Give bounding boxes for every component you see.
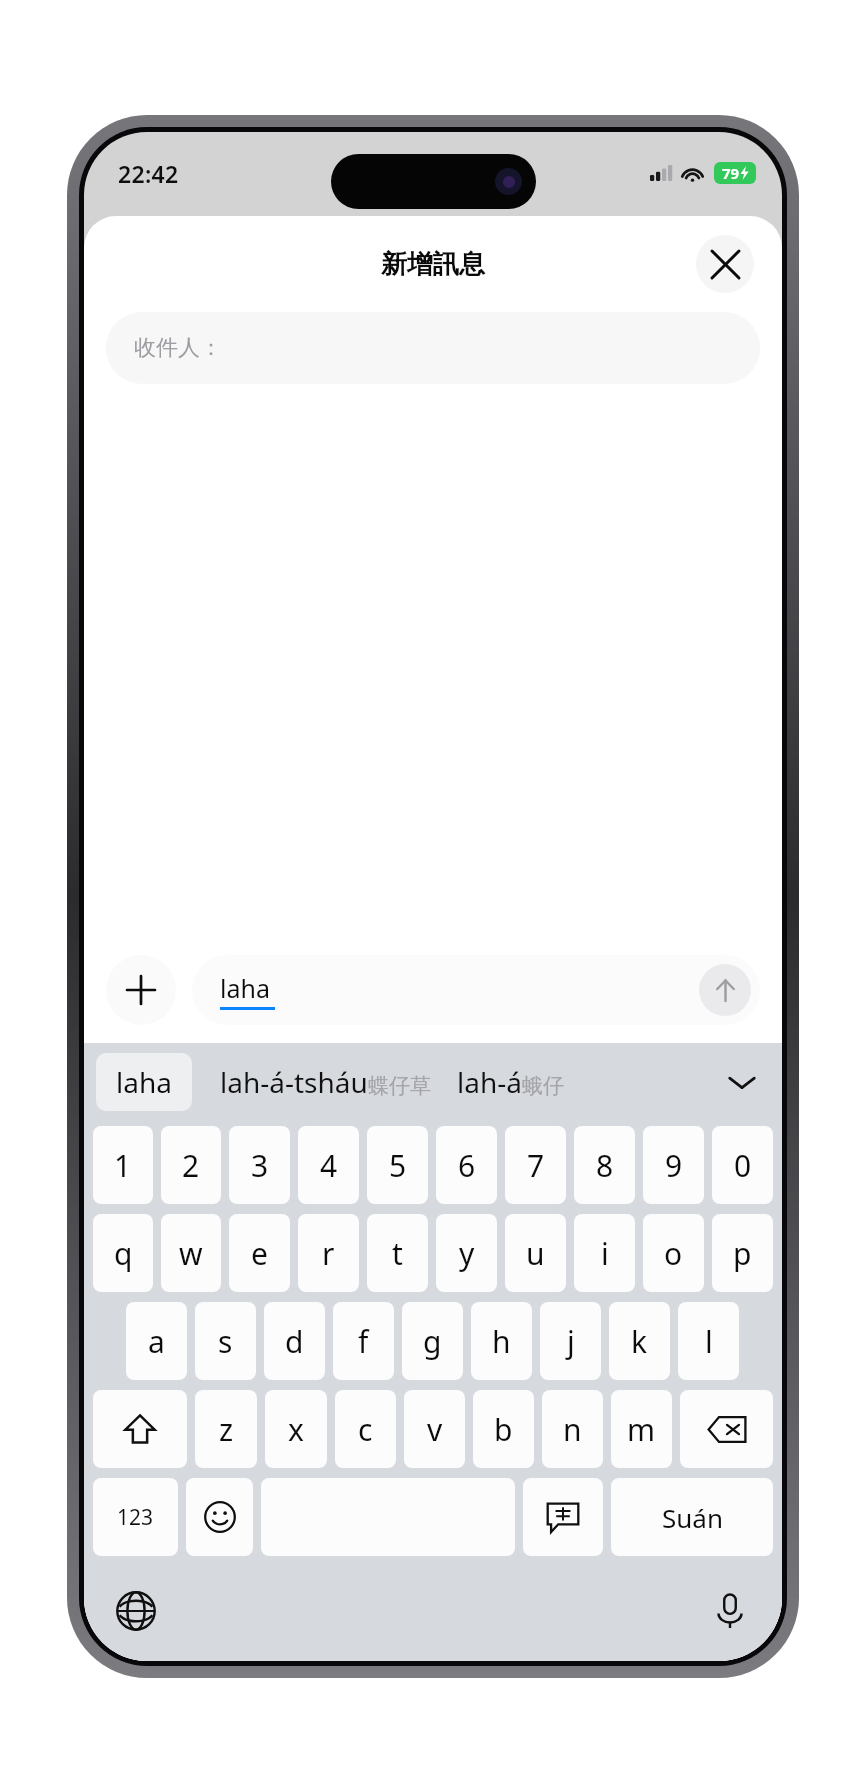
button[interactable]: x: [265, 1390, 327, 1468]
staticText: e: [251, 1233, 268, 1274]
staticText: x: [288, 1409, 304, 1450]
button[interactable]: More suggestions: [714, 1043, 770, 1121]
button[interactable]: Shift: [93, 1390, 187, 1468]
button[interactable]: 9: [643, 1126, 704, 1204]
button[interactable]: Suán: [611, 1478, 773, 1556]
button[interactable]: Delete: [680, 1390, 773, 1468]
staticText: q: [114, 1233, 133, 1274]
staticText: 8: [596, 1145, 614, 1186]
staticText: 蝶仔草: [368, 1073, 431, 1099]
button[interactable]: 0: [712, 1126, 773, 1204]
staticText: t: [392, 1233, 403, 1274]
button[interactable]: laha: [96, 1053, 192, 1111]
button[interactable]: q: [93, 1214, 153, 1292]
button[interactable]: 3: [229, 1126, 290, 1204]
staticText: y: [459, 1233, 475, 1274]
button[interactable]: a: [126, 1302, 187, 1380]
button[interactable]: Change keyboard: [108, 1583, 164, 1639]
staticText: laha: [220, 971, 270, 1005]
staticText: u: [526, 1233, 545, 1274]
button[interactable]: t: [367, 1214, 428, 1292]
button[interactable]: 2: [161, 1126, 221, 1204]
button[interactable]: y: [436, 1214, 497, 1292]
staticText: 6: [458, 1145, 476, 1186]
button[interactable]: n: [542, 1390, 603, 1468]
staticText: r: [322, 1233, 335, 1274]
staticText: k: [631, 1321, 648, 1362]
staticText: 收件人：: [134, 334, 222, 362]
staticText: 5: [389, 1145, 407, 1186]
button[interactable]: b: [473, 1390, 534, 1468]
button[interactable]: m: [611, 1390, 672, 1468]
button[interactable]: k: [609, 1302, 670, 1380]
button[interactable]: j: [540, 1302, 601, 1380]
button[interactable]: Dictate: [702, 1583, 758, 1639]
staticText: lah-á: [457, 1063, 522, 1101]
button[interactable]: Close: [696, 235, 754, 293]
button[interactable]: Input method: [523, 1478, 603, 1556]
staticText: 79: [722, 163, 740, 183]
staticText: 3: [251, 1145, 269, 1186]
button[interactable]: s: [195, 1302, 256, 1380]
button[interactable]: z: [195, 1390, 257, 1468]
button[interactable]: lah-á-tsháu: [220, 1063, 431, 1101]
staticText: h: [492, 1321, 511, 1362]
button[interactable]: e: [229, 1214, 290, 1292]
staticText: o: [664, 1233, 683, 1274]
button[interactable]: i: [574, 1214, 635, 1292]
staticText: s: [218, 1321, 233, 1362]
staticText: c: [358, 1409, 373, 1450]
button[interactable]: p: [712, 1214, 773, 1292]
button[interactable]: Add attachment: [106, 955, 176, 1025]
staticText: l: [705, 1321, 713, 1362]
staticText: z: [219, 1409, 234, 1450]
staticText: laha: [116, 1063, 172, 1101]
button[interactable]: v: [404, 1390, 465, 1468]
staticText: 0: [734, 1145, 752, 1186]
button[interactable]: 5: [367, 1126, 428, 1204]
staticText: d: [285, 1321, 304, 1362]
staticText: 新增訊息: [381, 248, 485, 281]
button[interactable]: d: [264, 1302, 325, 1380]
staticText: 2: [182, 1145, 200, 1186]
button[interactable]: 7: [505, 1126, 566, 1204]
staticText: m: [627, 1409, 656, 1450]
staticText: 1: [114, 1145, 132, 1186]
button[interactable]: g: [402, 1302, 463, 1380]
staticText: Suán: [662, 1500, 723, 1535]
staticText: p: [733, 1233, 752, 1274]
staticText: 22:42: [118, 158, 179, 189]
button[interactable]: Emoji: [186, 1478, 253, 1556]
staticText: n: [563, 1409, 582, 1450]
button[interactable]: o: [643, 1214, 704, 1292]
staticText: 123: [117, 1503, 154, 1532]
staticText: 蛾仔: [522, 1073, 564, 1099]
button[interactable]: c: [335, 1390, 396, 1468]
staticText: 9: [665, 1145, 683, 1186]
staticText: lah-á-tsháu: [220, 1063, 368, 1101]
button[interactable]: 4: [298, 1126, 359, 1204]
staticText: b: [494, 1409, 513, 1450]
staticText: a: [148, 1321, 165, 1362]
button[interactable]: r: [298, 1214, 359, 1292]
staticText: f: [358, 1321, 369, 1362]
staticText: g: [423, 1321, 442, 1362]
button[interactable]: 123: [93, 1478, 178, 1556]
button[interactable]: lah-á: [457, 1063, 714, 1101]
button[interactable]: laha: [192, 955, 760, 1025]
staticText: w: [179, 1233, 203, 1274]
button[interactable]: 6: [436, 1126, 497, 1204]
button[interactable]: l: [678, 1302, 739, 1380]
button[interactable]: Send: [699, 964, 751, 1016]
staticText: j: [567, 1321, 575, 1362]
button[interactable]: u: [505, 1214, 566, 1292]
staticText: 4: [320, 1145, 338, 1186]
button[interactable]: 8: [574, 1126, 635, 1204]
button[interactable]: h: [471, 1302, 532, 1380]
staticText: i: [601, 1233, 609, 1274]
button[interactable]: f: [333, 1302, 394, 1380]
button[interactable]: 1: [93, 1126, 153, 1204]
button[interactable]: 收件人：: [106, 312, 760, 384]
button[interactable]: w: [161, 1214, 221, 1292]
